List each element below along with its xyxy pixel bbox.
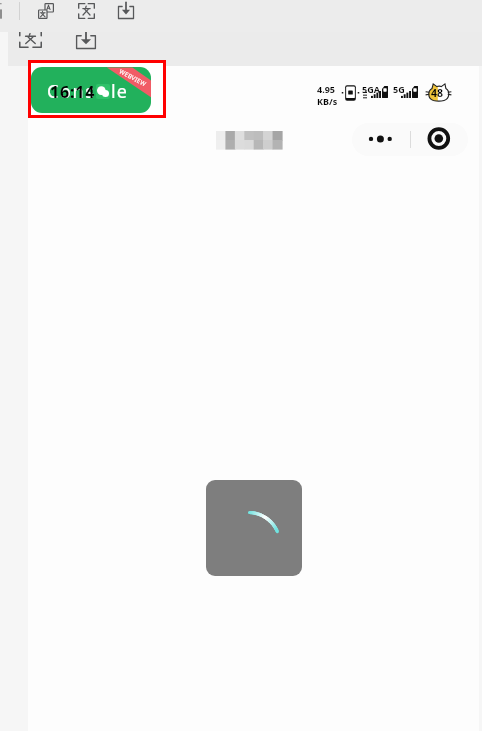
button[interactable]: Close mini program [411,123,468,156]
staticText: le [111,79,129,104]
staticText: 5GA [362,83,380,95]
staticText: 16:14 [50,81,96,103]
button[interactable]: Menu [0,3,2,19]
staticText: Cons [47,79,96,104]
button[interactable]: Translate region [19,32,42,48]
staticText: WEBVIEW [118,67,148,88]
button[interactable]: Cons [31,67,151,113]
button[interactable]: Translate region [78,3,95,19]
button[interactable]: Save image [118,2,134,19]
staticText: 4.95 [317,83,335,95]
staticText: KB/s [317,95,338,107]
button[interactable]: More options [352,123,410,156]
button[interactable]: Save image [76,32,96,49]
staticText: 5G [393,83,405,95]
staticText: 48 [431,86,444,100]
button[interactable]: Translate [38,3,54,19]
